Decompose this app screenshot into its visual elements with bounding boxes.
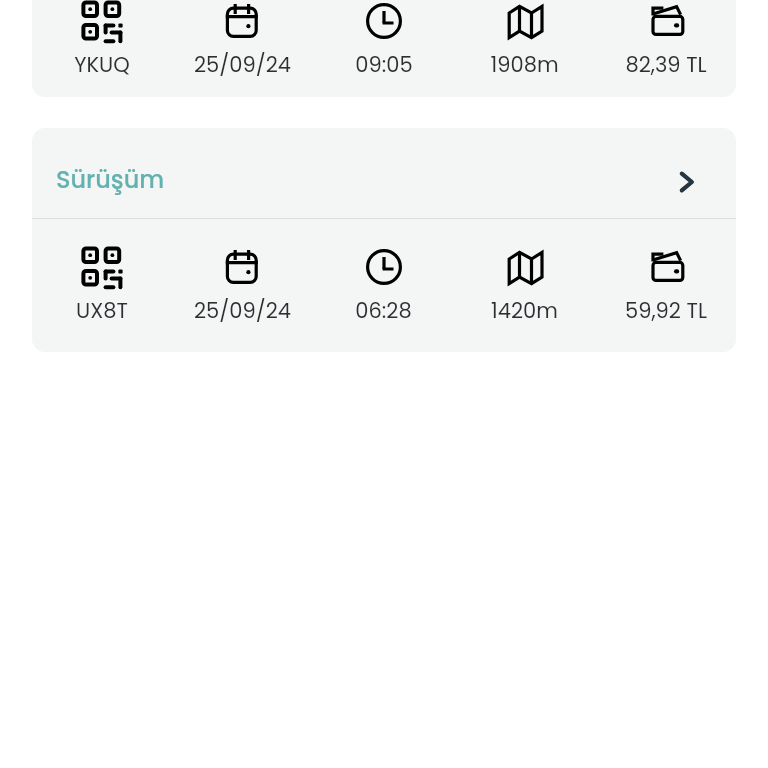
staticText: 82,39 TL: [625, 50, 707, 79]
staticText: 06:28: [355, 296, 412, 325]
staticText: 09:05: [355, 50, 413, 79]
staticText: 1908m: [490, 50, 559, 79]
staticText: 1420m: [491, 296, 558, 325]
staticText: 59,92 TL: [625, 296, 707, 325]
staticText: YKUQ: [74, 50, 130, 79]
staticText: 25/09/24: [194, 296, 291, 325]
other: Open my rides: [679, 168, 707, 196]
button[interactable]: UX8T: [32, 219, 736, 352]
staticText: Sürüşüm: [56, 163, 165, 197]
button[interactable]: YKUQ: [32, 0, 736, 97]
button[interactable]: Sürüşüm: [32, 128, 736, 218]
staticText: 25/09/24: [194, 50, 291, 79]
staticText: UX8T: [76, 296, 128, 325]
